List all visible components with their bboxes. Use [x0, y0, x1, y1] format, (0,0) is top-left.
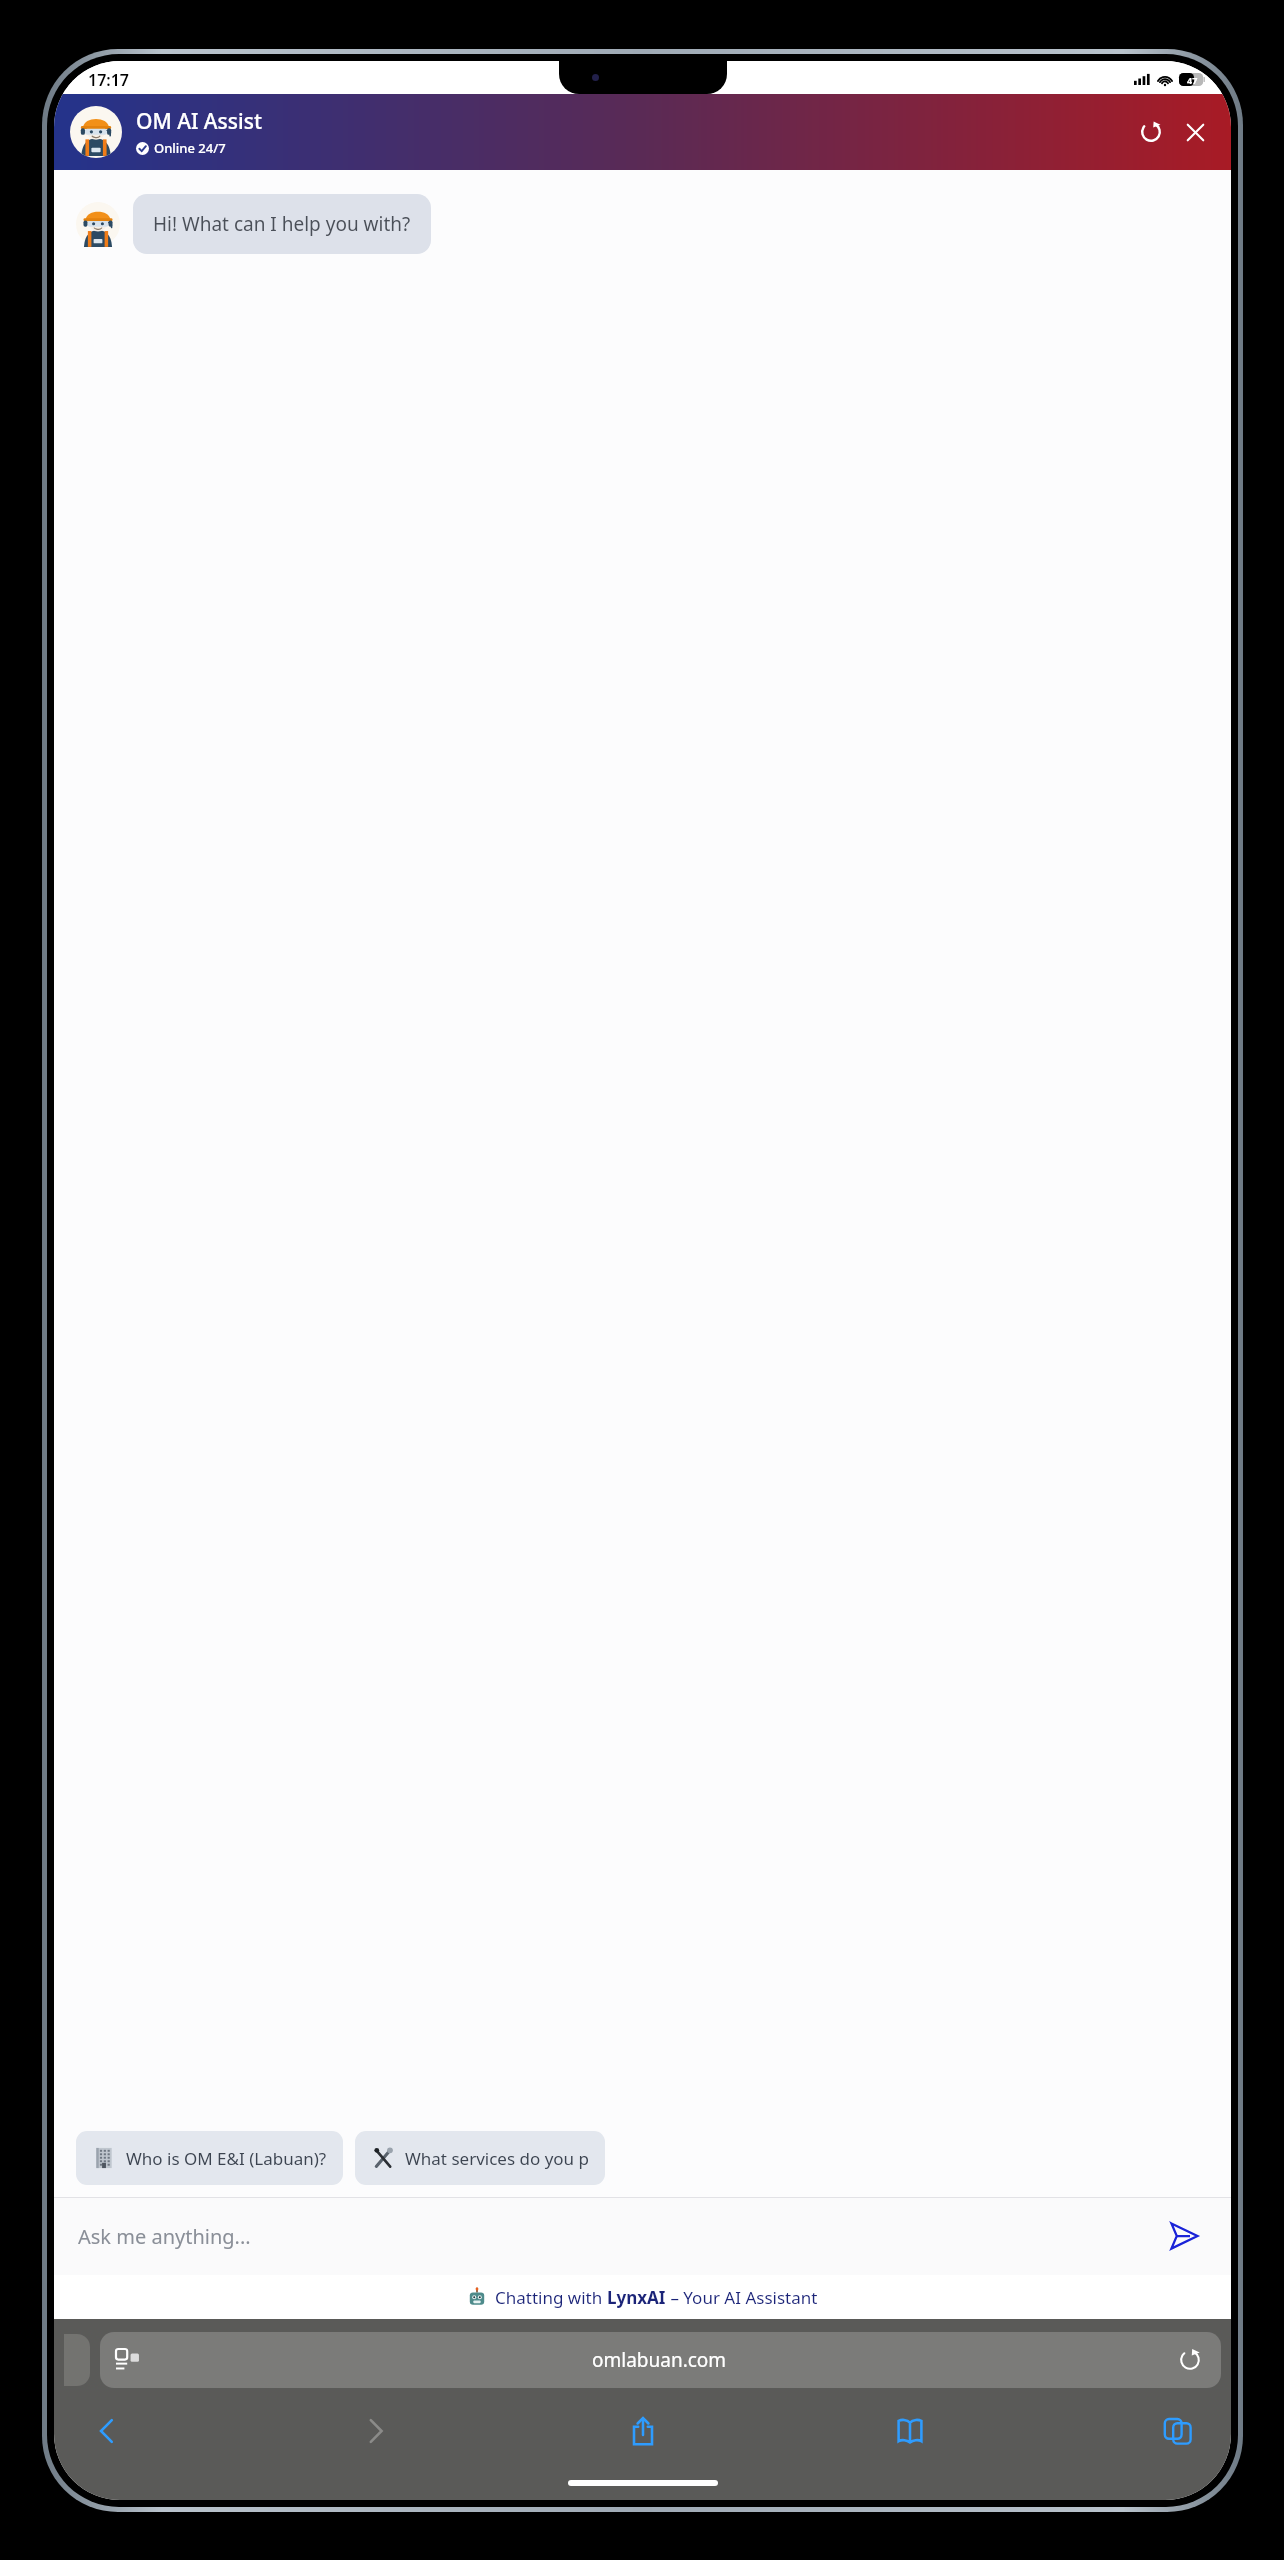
staticText: Ask me anything...: [78, 2223, 251, 2250]
button[interactable]: Who is OM E&I (Labuan)?: [76, 2131, 343, 2185]
staticText: – Your AI Assistant: [666, 2286, 818, 2309]
staticText: Online 24/7: [154, 139, 226, 157]
button[interactable]: Previous tab: [64, 2334, 90, 2386]
button[interactable]: Back: [80, 2404, 134, 2458]
button[interactable]: Ask me anything...: [78, 2223, 1161, 2250]
staticText: LynxAI: [607, 2286, 666, 2309]
staticText: 17:17: [88, 69, 130, 91]
button[interactable]: Send message: [1161, 2213, 1207, 2259]
staticText: Hi! What can I help you with?: [153, 211, 411, 237]
button[interactable]: Hi! What can I help you with?: [133, 194, 431, 254]
button[interactable]: Forward: [348, 2404, 402, 2458]
button[interactable]: Refresh conversation: [1131, 112, 1171, 152]
staticText: OM AI Assist: [136, 107, 262, 136]
button[interactable]: What services do you p: [355, 2131, 605, 2185]
button[interactable]: Page settings: [100, 2332, 1221, 2388]
staticText: Who is OM E&I (Labuan)?: [126, 2147, 327, 2170]
button[interactable]: Close chat: [1175, 112, 1215, 152]
staticText: What services do you p: [405, 2147, 589, 2170]
button[interactable]: Page settings: [116, 2349, 144, 2371]
button[interactable]: Share: [616, 2404, 670, 2458]
staticText: Chatting with: [495, 2286, 607, 2309]
staticText: omlabuan.com: [592, 2347, 727, 2373]
button[interactable]: Tabs: [1151, 2404, 1205, 2458]
button[interactable]: Bookmarks: [883, 2404, 937, 2458]
button[interactable]: Reload page: [1175, 2345, 1205, 2375]
staticText: 47: [1187, 74, 1198, 86]
